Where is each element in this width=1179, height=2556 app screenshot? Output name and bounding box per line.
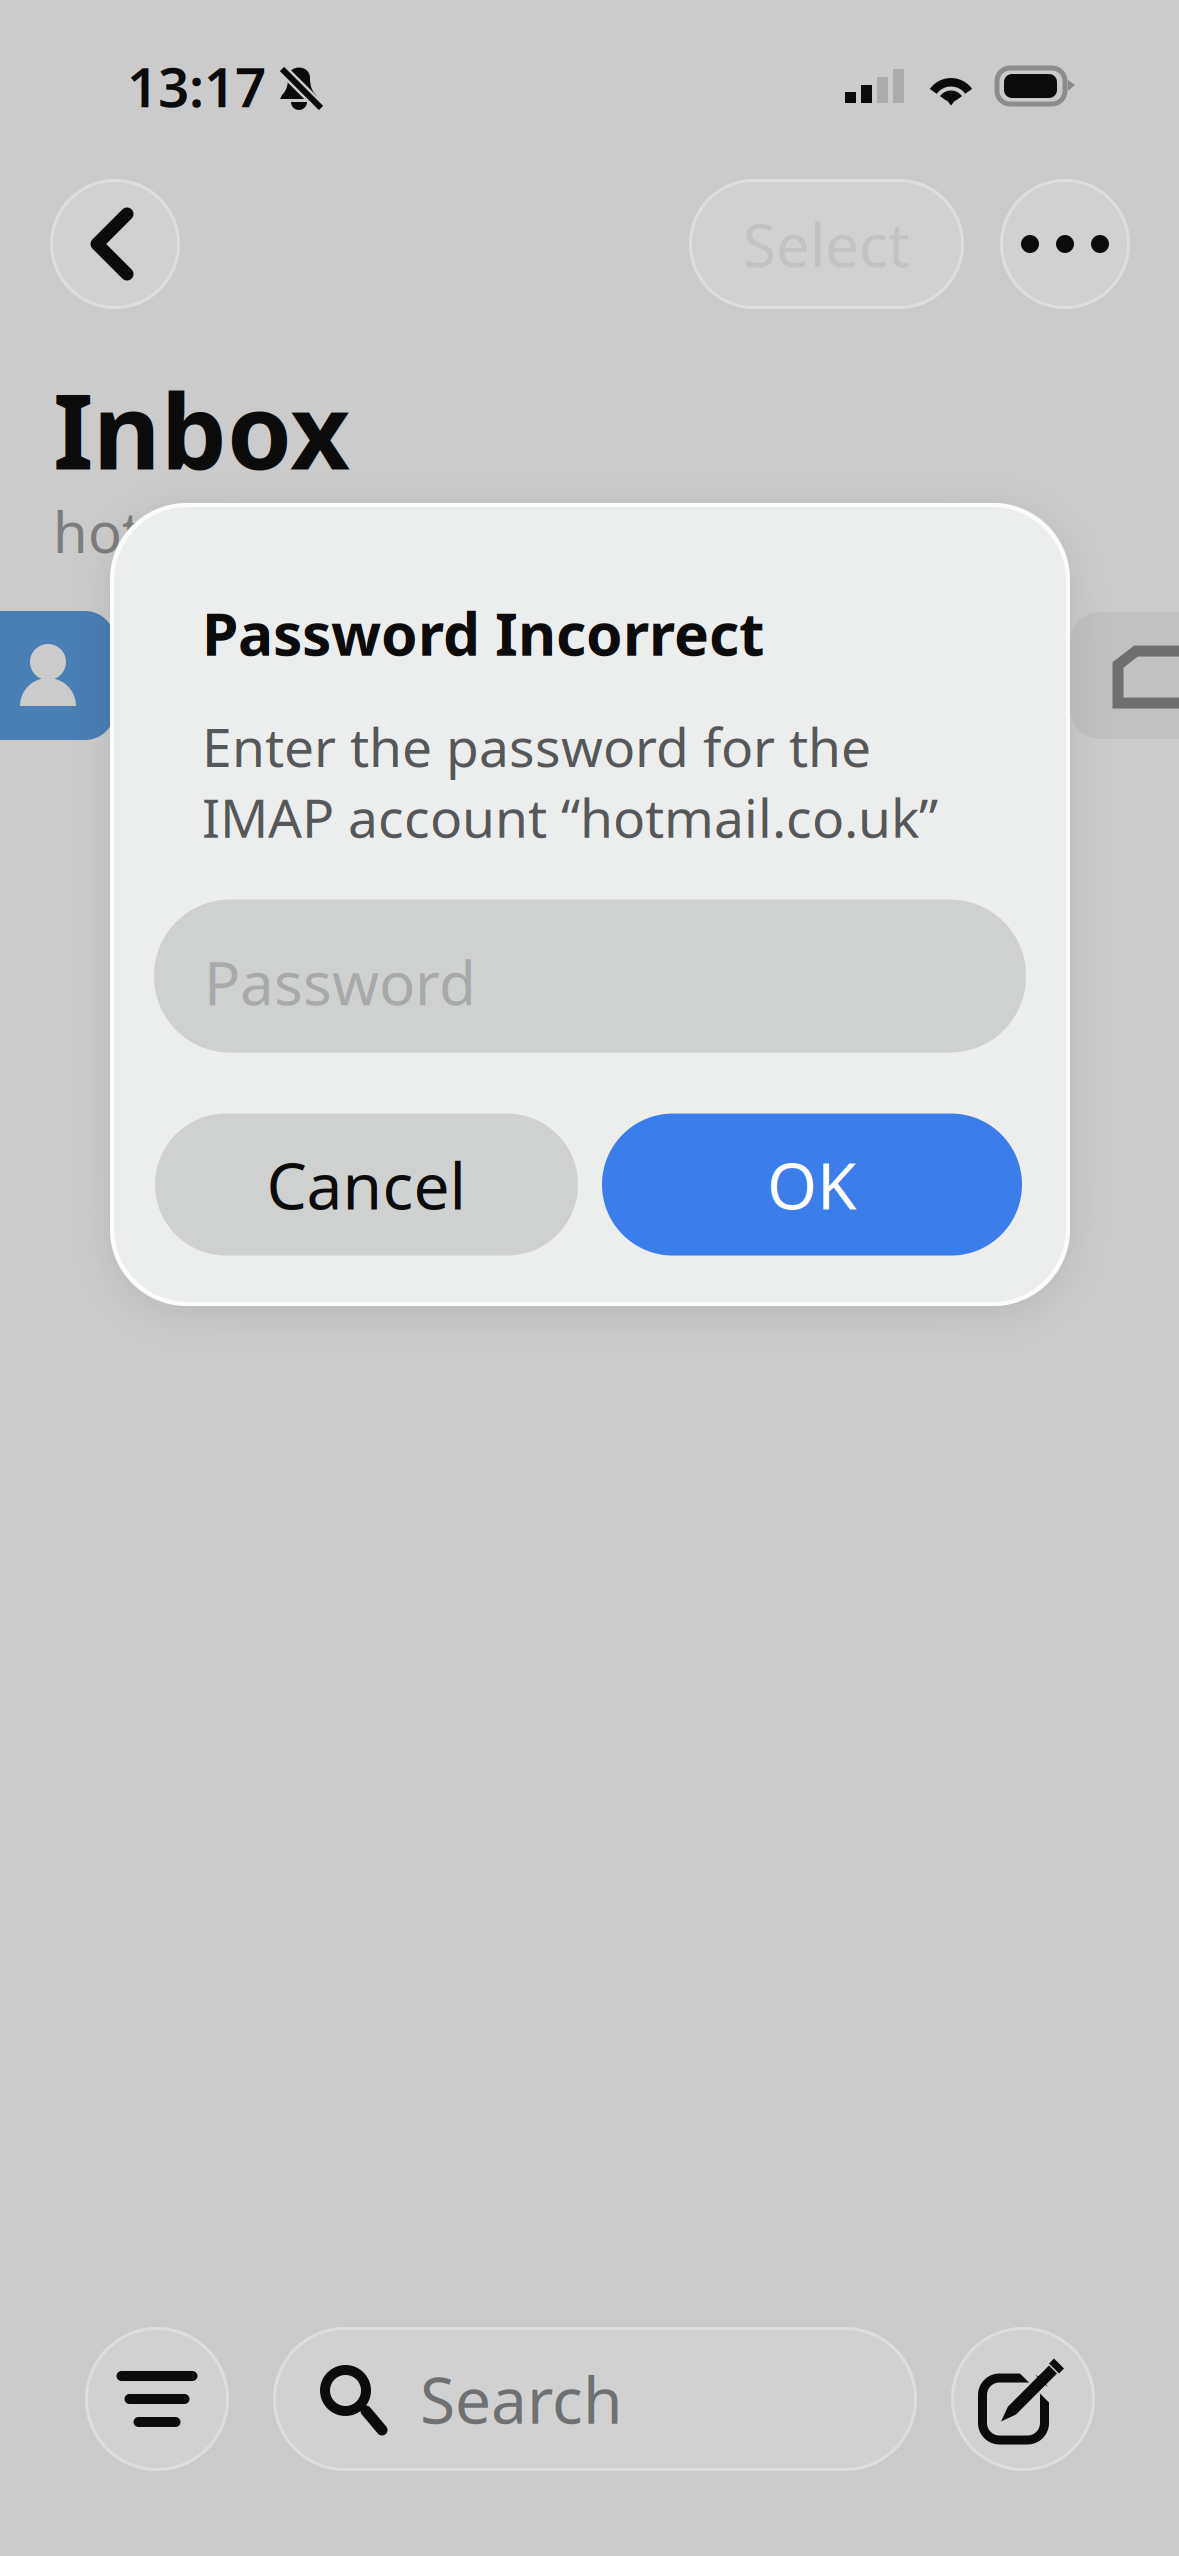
staticText: Search	[420, 2356, 623, 2441]
staticText: Select	[743, 204, 910, 284]
staticText: hotmail.co.uk	[53, 494, 409, 568]
staticText: Inbox	[53, 360, 350, 498]
staticText: Password	[204, 942, 476, 1022]
staticText: Enter the password for the	[202, 711, 871, 782]
button[interactable]: Select	[689, 179, 964, 309]
staticText: Password Incorrect	[202, 594, 764, 672]
button[interactable]: Search	[273, 2327, 917, 2471]
button[interactable]: Back	[50, 179, 180, 309]
staticText: IMAP account “hotmail.co.uk”	[202, 782, 938, 852]
button[interactable]: Filter	[85, 2327, 229, 2471]
button[interactable]: More options	[1000, 179, 1130, 309]
staticText: OK	[767, 1142, 857, 1227]
staticText: Cancel	[266, 1142, 466, 1227]
button[interactable]: Compose	[951, 2327, 1095, 2471]
staticText: 13:17	[127, 50, 266, 122]
button[interactable]: Cancel	[155, 1114, 578, 1256]
button[interactable]: OK	[602, 1114, 1022, 1256]
